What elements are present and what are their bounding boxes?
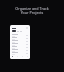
staticText: Organize and Track Your Projects — [0, 6, 64, 15]
button[interactable] — [10, 25, 30, 59]
